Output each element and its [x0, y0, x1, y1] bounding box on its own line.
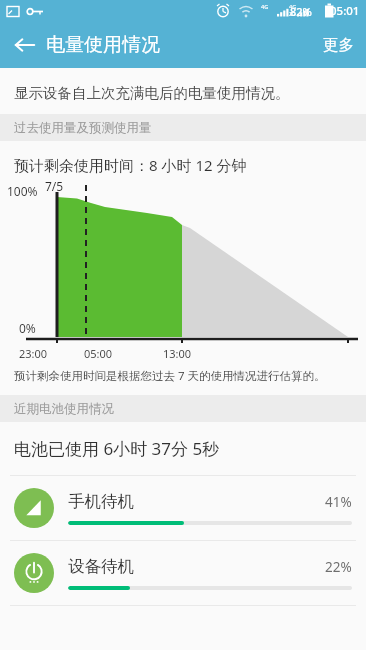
button[interactable]: 设备待机 [0, 541, 366, 605]
staticText: 4G [289, 3, 297, 10]
button[interactable]: 返回 [6, 26, 44, 64]
staticText: 7/5 [45, 178, 64, 194]
staticText: 过去使用量及预测使用量 [14, 120, 152, 136]
staticText: 更多 [323, 35, 354, 55]
staticText: 电量使用情况 [46, 33, 160, 57]
staticText: 电池已使用 6小时 37分 5秒 [14, 437, 220, 460]
staticText: 05:00 [84, 346, 113, 360]
button[interactable]: 更多 [311, 29, 366, 61]
button[interactable]: 手机待机 [0, 476, 366, 540]
staticText: 显示设备自上次充满电后的电量使用情况。 [14, 84, 290, 102]
staticText: 05:01 [330, 3, 360, 19]
staticText: 预计剩余使用时间是根据您过去 7 天的使用情况进行估算的。 [14, 368, 326, 384]
staticText: 2G [289, 11, 296, 18]
staticText: 13:00 [163, 346, 192, 360]
staticText: 23:00 [19, 346, 48, 360]
staticText: 近期电池使用情况 [14, 401, 114, 417]
staticText: 设备待机 [68, 556, 325, 577]
staticText: 预计剩余使用时间：8 小时 12 分钟 [14, 155, 247, 175]
staticText: 22% [325, 558, 352, 576]
staticText: 0% [19, 320, 36, 336]
staticText: 41% [325, 493, 352, 511]
staticText: 4G [261, 3, 269, 10]
staticText: 82% [290, 4, 312, 19]
staticText: 100% [7, 183, 38, 199]
staticText: 手机待机 [68, 491, 325, 512]
